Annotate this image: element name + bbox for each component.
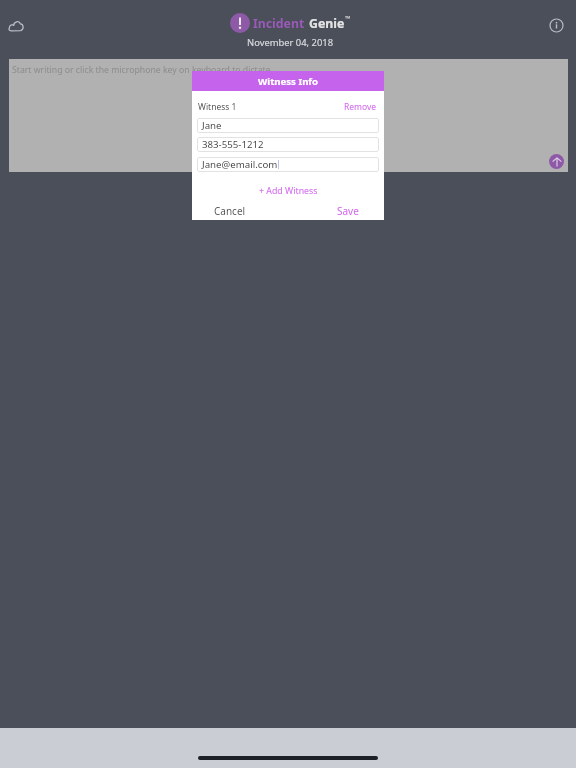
staticText: + Add Witness <box>259 185 318 197</box>
button[interactable]: + Add Witness <box>259 185 318 197</box>
staticText: November 04, 2018 <box>247 36 334 49</box>
button[interactable]: Information <box>542 11 570 39</box>
button[interactable]: Save <box>337 204 359 218</box>
staticText: ™ <box>345 14 351 24</box>
button[interactable]: Jane@email.com <box>197 157 379 172</box>
button[interactable]: Submit <box>549 154 564 169</box>
staticText: Witness 1 <box>198 101 237 113</box>
staticText: Genie <box>309 15 345 32</box>
staticText: Start writing or click the microphone ke… <box>12 64 273 76</box>
button[interactable]: Cloud sync <box>1 10 31 40</box>
button[interactable]: Cancel <box>214 204 246 218</box>
staticText: Cancel <box>214 204 246 218</box>
staticText: Save <box>337 204 359 218</box>
button[interactable]: Remove <box>344 101 377 113</box>
button[interactable]: Jane <box>197 118 379 133</box>
button[interactable]: Witness 1 <box>198 101 237 113</box>
button[interactable]: 383-555-1212 <box>197 137 379 152</box>
staticText: Jane <box>202 119 222 132</box>
staticText: Witness Info <box>258 75 319 88</box>
staticText: 383-555-1212 <box>202 138 264 151</box>
staticText: Jane@email.com <box>202 158 278 171</box>
staticText: Incident <box>253 15 305 32</box>
staticText: Remove <box>344 101 377 113</box>
